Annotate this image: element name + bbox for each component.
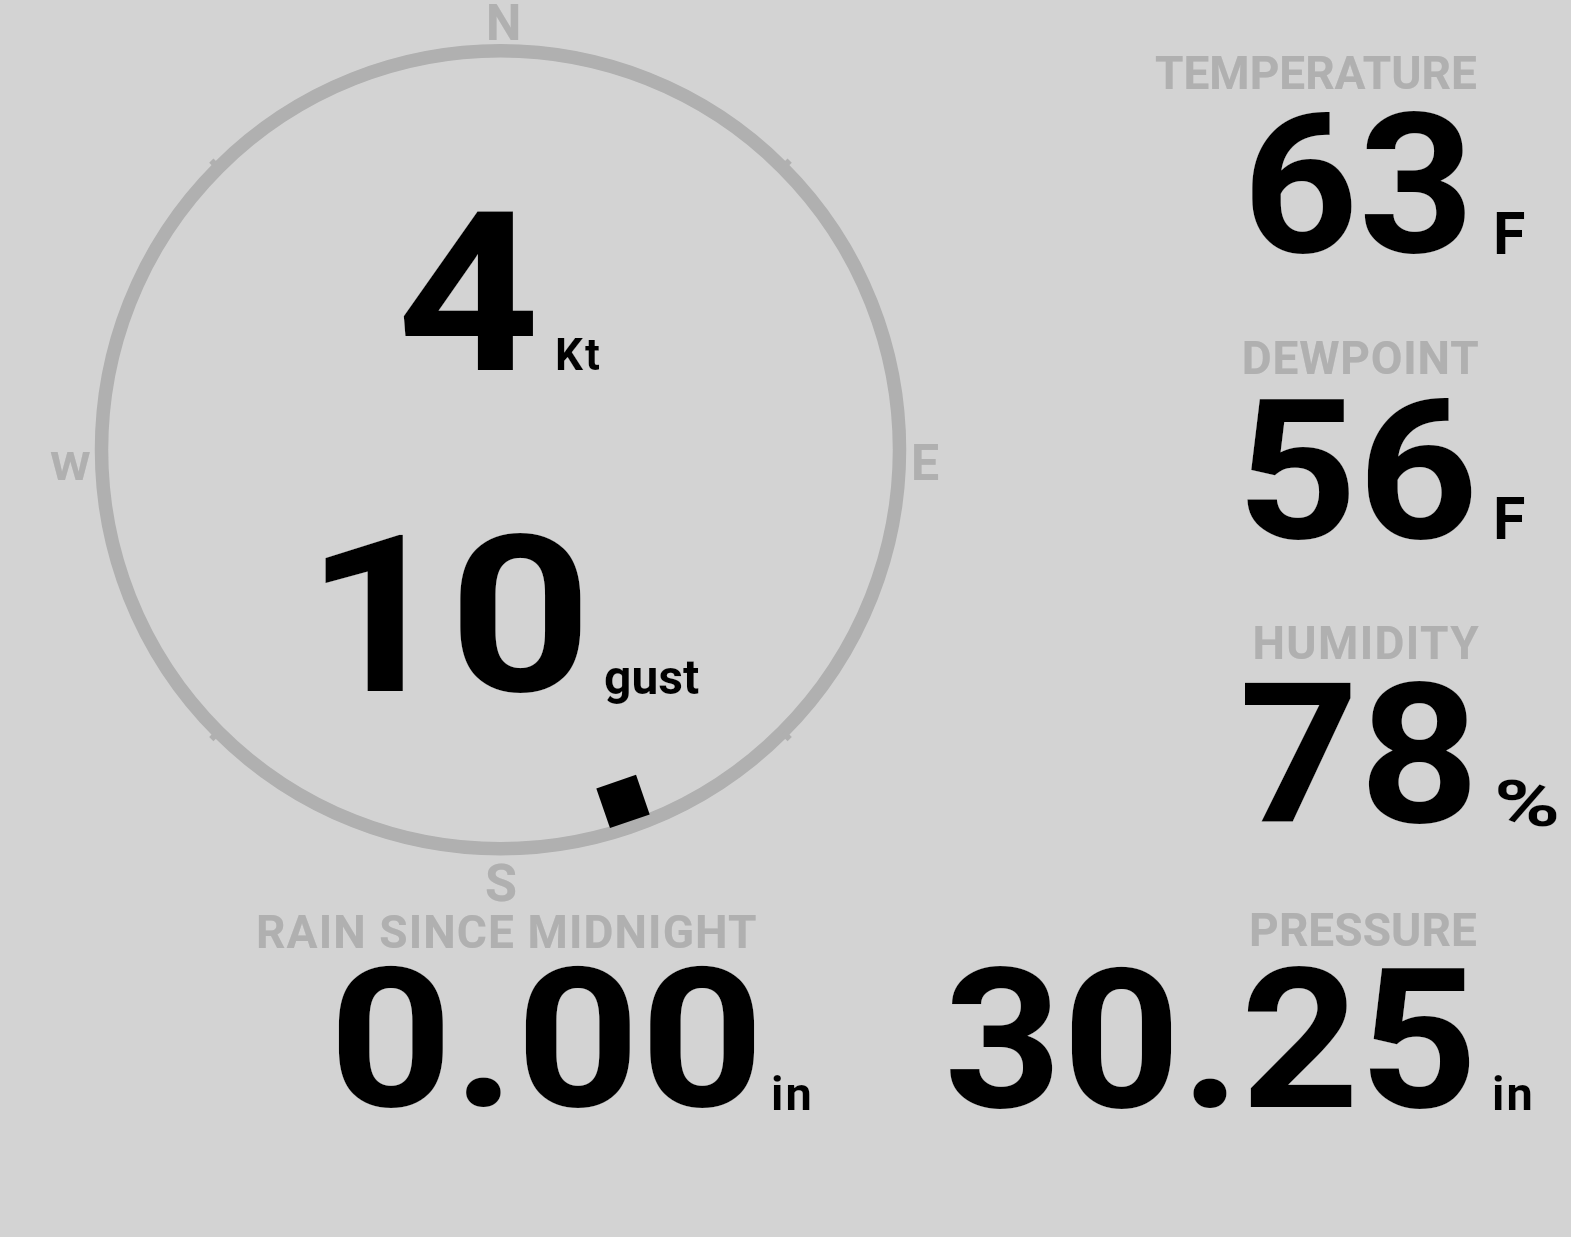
button[interactable]: Rain since midnight 0.00 in xyxy=(160,880,960,1140)
button[interactable]: Pressure 30.25 in xyxy=(960,880,1571,1140)
button[interactable]: Dew point 56 F xyxy=(960,300,1571,590)
button[interactable]: Humidity 78 percent xyxy=(960,590,1571,880)
button[interactable]: Wind 4 knots gusting 10, compass xyxy=(0,0,960,900)
button[interactable]: Temperature 63 F xyxy=(960,0,1571,300)
